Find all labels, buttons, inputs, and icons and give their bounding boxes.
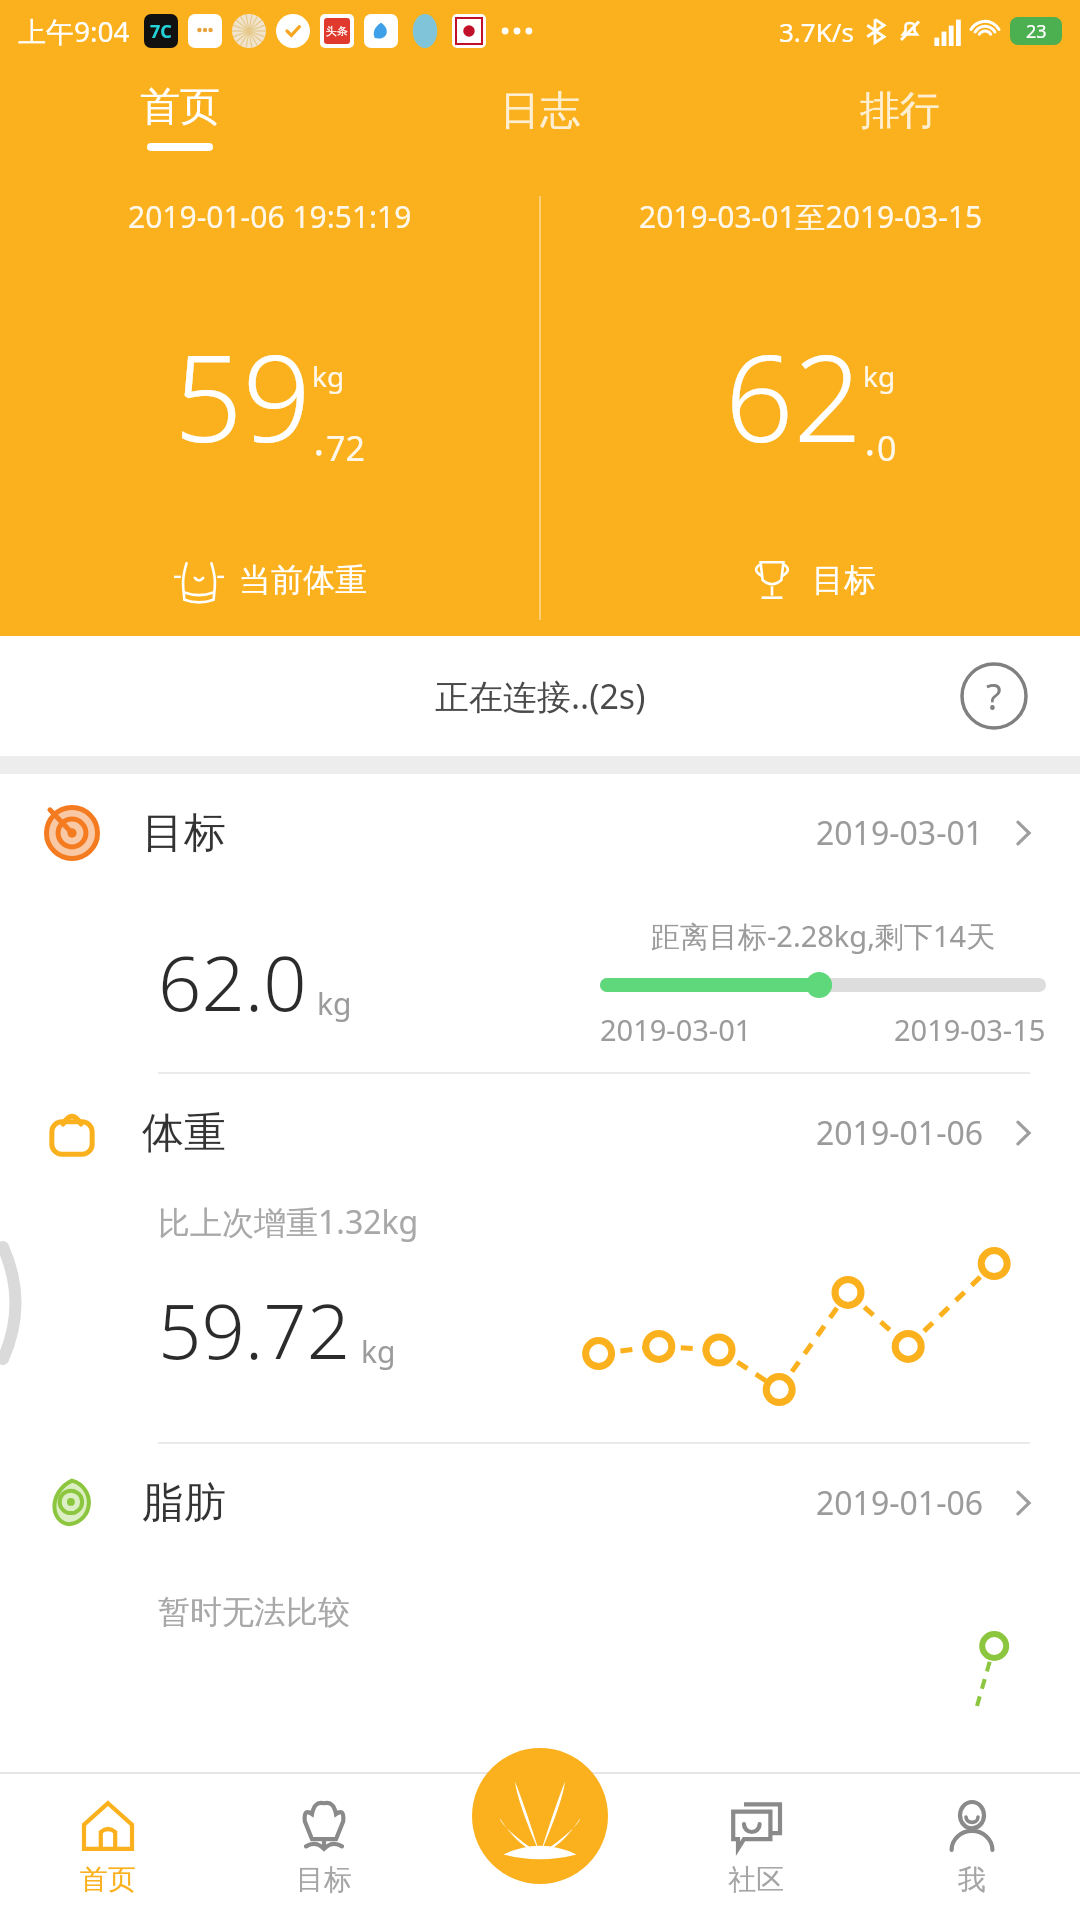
staticText: 2019-03-01	[600, 1010, 752, 1049]
button[interactable]: 2019-01-06 19:51:19	[0, 170, 539, 636]
button[interactable]: 2019-03-01至2019-03-15	[541, 170, 1080, 636]
staticText: 62	[725, 314, 863, 477]
staticText: 体重	[142, 1107, 226, 1160]
staticText: 59.72	[158, 1278, 351, 1382]
button[interactable]: 目标	[0, 774, 1080, 892]
button[interactable]: 体重	[0, 1074, 1080, 1192]
button[interactable]: 排行	[720, 62, 1080, 170]
button[interactable]: 日志	[360, 62, 720, 170]
staticText: 头条	[326, 24, 348, 38]
staticText: 2019-01-06 19:51:19	[128, 196, 412, 237]
staticText: 日志	[500, 85, 580, 135]
staticText: 目标	[296, 1862, 352, 1897]
button[interactable]: 社区	[648, 1772, 864, 1920]
staticText: 目标	[812, 560, 876, 600]
staticText: 0	[877, 425, 897, 471]
staticText: 距离目标-2.28kg,剩下14天	[651, 916, 996, 956]
staticText: 2019-03-01至2019-03-15	[639, 196, 983, 237]
staticText: 暂时无法比较	[158, 1592, 350, 1632]
staticText: 72	[326, 425, 365, 471]
staticText: 当前体重	[239, 560, 367, 600]
button[interactable]: Add record	[472, 1748, 608, 1884]
staticText: 脂肪	[142, 1477, 226, 1530]
staticText: .	[312, 395, 326, 471]
staticText: kg	[863, 357, 896, 395]
button[interactable]: 目标	[216, 1772, 432, 1920]
staticText: 23	[1026, 19, 1047, 44]
staticText: 比上次增重1.32kg	[158, 1200, 419, 1244]
button[interactable]: 我	[864, 1772, 1080, 1920]
staticText: 社区	[728, 1862, 784, 1897]
staticText: 首页	[140, 81, 220, 131]
button[interactable]: 首页	[0, 1772, 216, 1920]
staticText: .	[863, 395, 877, 471]
staticText: 62.0	[158, 930, 307, 1034]
staticText: 目标	[142, 807, 226, 860]
staticText: kg	[361, 1331, 396, 1372]
staticText: 我	[958, 1862, 986, 1897]
staticText: kg	[312, 357, 345, 395]
button[interactable]: 正在连接..(2s)	[0, 636, 1080, 756]
staticText: 首页	[80, 1862, 136, 1897]
button[interactable]: Help	[960, 662, 1028, 730]
staticText: 2019-01-06	[816, 1111, 984, 1155]
staticText: 59	[174, 314, 312, 477]
staticText: ?	[986, 672, 1002, 721]
staticText: 正在连接..(2s)	[435, 673, 646, 719]
staticText: 3.7K/s	[779, 14, 854, 49]
button[interactable]: 脂肪	[0, 1444, 1080, 1562]
staticText: kg	[317, 983, 352, 1024]
staticText: 2019-03-15	[894, 1010, 1046, 1049]
staticText: 2019-01-06	[816, 1481, 984, 1525]
staticText: 上午9:04	[18, 12, 130, 50]
button[interactable]: 首页	[0, 62, 360, 170]
staticText: 7C	[150, 19, 172, 44]
staticText: 排行	[860, 85, 940, 135]
staticText: 2019-03-01	[816, 811, 984, 855]
